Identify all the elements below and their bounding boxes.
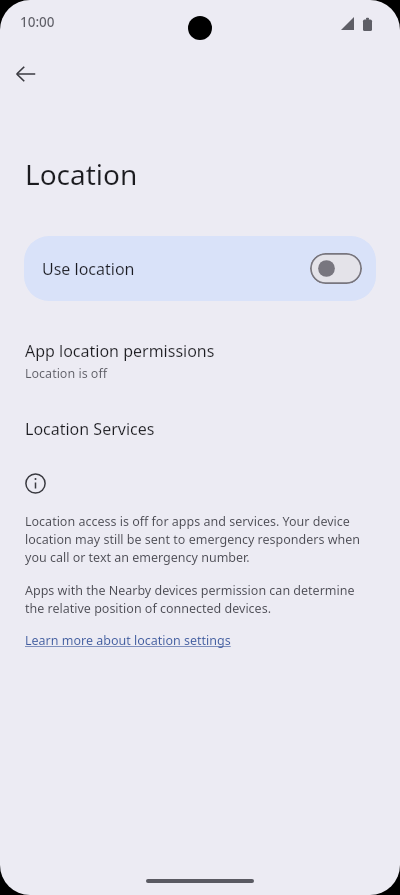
staticText: Location — [25, 155, 138, 193]
button[interactable]: Location Services — [0, 416, 400, 442]
staticText: Apps with the Nearby devices permission … — [25, 582, 375, 617]
staticText: Use location — [42, 258, 135, 280]
staticText: Location access is off for apps and serv… — [25, 513, 375, 566]
button[interactable]: Use location — [24, 236, 376, 301]
button[interactable]: Learn more about location settings — [25, 632, 231, 649]
staticText: 10:00 — [20, 13, 55, 31]
staticText: Location Services — [25, 418, 155, 440]
button[interactable]: Back — [6, 54, 46, 94]
staticText: App location permissions — [25, 340, 215, 362]
staticText: Location is off — [25, 365, 108, 382]
staticText: Learn more about location settings — [25, 632, 231, 649]
button[interactable]: Use location toggle — [310, 253, 362, 284]
button[interactable]: App location permissions — [0, 338, 400, 384]
